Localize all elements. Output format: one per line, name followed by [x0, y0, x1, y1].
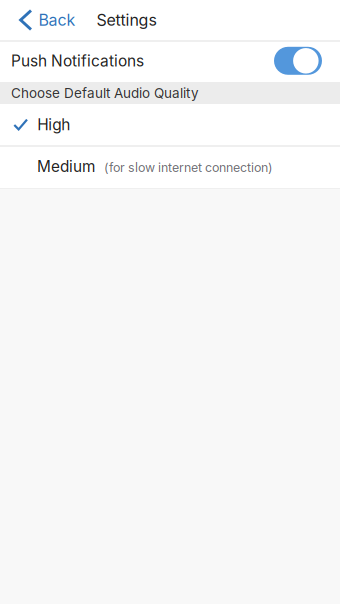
button[interactable]: Back [0, 0, 87, 40]
staticText: Push Notifications [11, 51, 144, 70]
button[interactable]: Push Notifications [0, 42, 340, 82]
staticText: High [37, 115, 70, 134]
staticText: Settings [96, 10, 156, 30]
button[interactable]: Medium [0, 147, 340, 188]
staticText: (for slow internet connection) [104, 160, 273, 175]
staticText: Choose Default Audio Quality [11, 85, 199, 101]
staticText: Medium [37, 157, 95, 176]
button[interactable]: High [0, 104, 340, 145]
staticText: Back [38, 10, 75, 30]
